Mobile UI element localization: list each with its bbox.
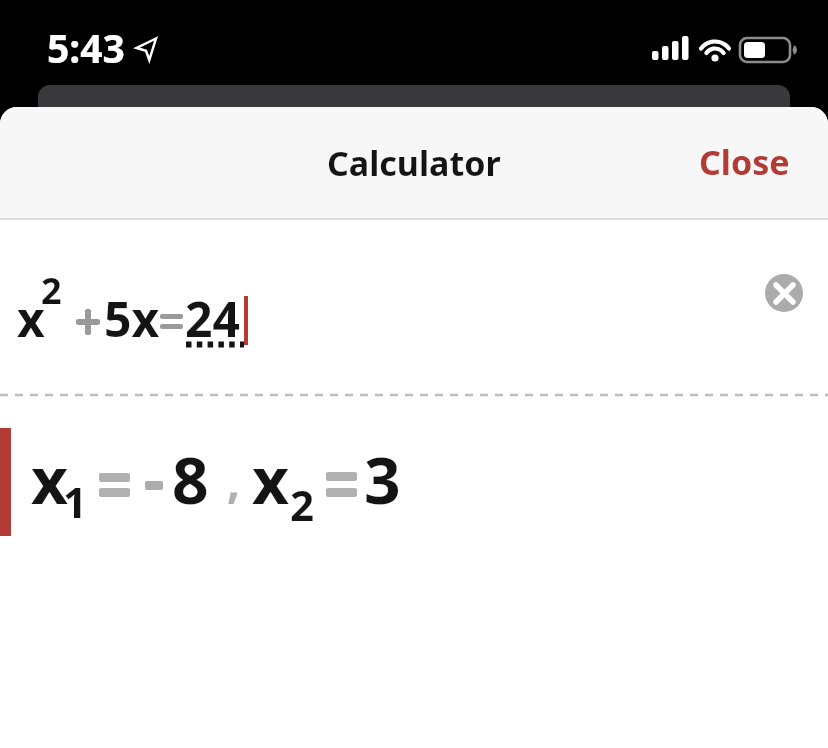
staticText: Calculator xyxy=(327,140,501,186)
staticText: 5:43 xyxy=(47,21,125,74)
staticText: 3 xyxy=(364,436,401,523)
staticText: , xyxy=(227,449,241,512)
staticText: 1 xyxy=(63,473,88,530)
button[interactable] xyxy=(765,274,803,312)
staticText: 8 xyxy=(172,436,209,523)
staticText: Close xyxy=(699,139,790,185)
staticText: x xyxy=(252,436,289,523)
staticText: 2 xyxy=(41,266,62,315)
button[interactable]: Close xyxy=(686,132,802,192)
staticText: 5x xyxy=(104,286,160,351)
staticText: x xyxy=(31,436,68,523)
staticText: 2 xyxy=(290,476,315,533)
button[interactable]: Calculator xyxy=(300,136,528,190)
staticText: x xyxy=(17,286,45,351)
staticText: 24 xyxy=(185,286,240,351)
